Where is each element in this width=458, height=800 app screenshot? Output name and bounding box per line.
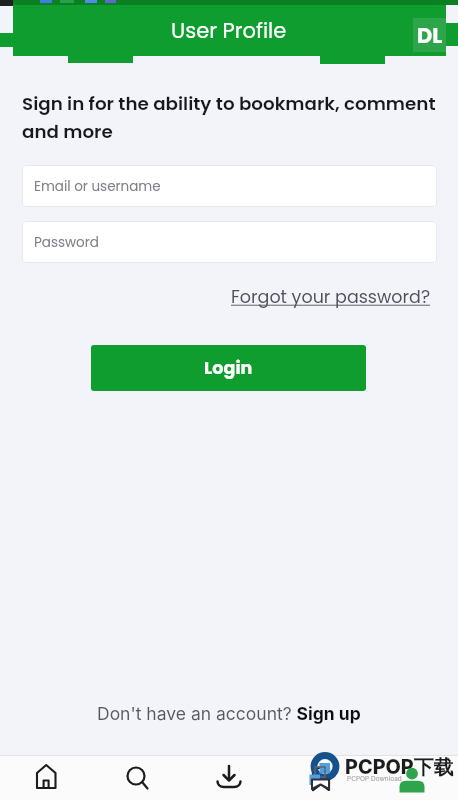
button[interactable] (207, 755, 251, 799)
button[interactable]: Login (91, 345, 366, 391)
button[interactable] (299, 757, 343, 800)
staticText: Don't have an account? Sign up (97, 703, 361, 724)
staticText: Forgot your password? (231, 285, 431, 310)
staticText: Password (34, 233, 99, 252)
button[interactable] (116, 756, 160, 800)
button[interactable]: Don't have an account? Sign up (0, 703, 458, 724)
staticText: User Profile (171, 16, 287, 45)
staticText: PCPOP Download (347, 775, 402, 783)
button[interactable]: Forgot your password? (0, 285, 431, 310)
staticText: PCPOP下载 (345, 755, 454, 780)
staticText: Email or username (34, 177, 161, 196)
button[interactable]: DL (413, 18, 446, 52)
staticText: Sign in for the ability to bookmark, com… (22, 91, 436, 117)
staticText: and more (22, 119, 113, 145)
button[interactable]: Email or username (22, 165, 437, 207)
button[interactable] (24, 755, 68, 799)
button[interactable] (390, 757, 434, 800)
staticText: Login (204, 356, 253, 381)
staticText: DL (417, 21, 443, 50)
button[interactable]: Password (22, 221, 437, 263)
